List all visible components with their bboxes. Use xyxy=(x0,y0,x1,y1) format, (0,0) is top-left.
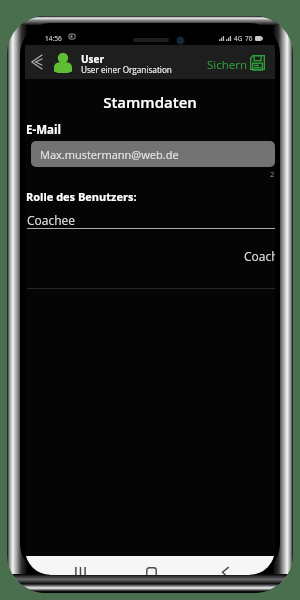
staticText: Max.mustermann@web.de xyxy=(40,147,179,162)
staticText: User xyxy=(81,52,104,66)
button[interactable]: Max.mustermann@web.de xyxy=(31,141,275,167)
button[interactable]: Back xyxy=(25,50,49,74)
staticText: 2 xyxy=(270,169,275,179)
staticText: User einer Organisation xyxy=(81,64,172,75)
button[interactable]: Back xyxy=(201,556,247,575)
button[interactable]: Coach xyxy=(25,245,275,267)
staticText: E-Mail xyxy=(26,122,61,138)
staticText: 76 xyxy=(245,34,253,43)
button[interactable]: Sichern xyxy=(205,49,273,75)
staticText: Sichern xyxy=(207,57,247,73)
staticText: Coachee xyxy=(27,212,76,228)
staticText: Coach xyxy=(244,248,275,264)
staticText: 14:56 xyxy=(45,34,62,43)
button[interactable]: Home xyxy=(128,556,174,575)
staticText: Rolle des Benutzers: xyxy=(26,189,137,204)
staticText: Stammdaten xyxy=(25,92,275,112)
button[interactable]: Coachee xyxy=(25,209,275,231)
button[interactable]: Recent apps xyxy=(57,556,103,575)
staticText: 4G xyxy=(234,34,243,43)
